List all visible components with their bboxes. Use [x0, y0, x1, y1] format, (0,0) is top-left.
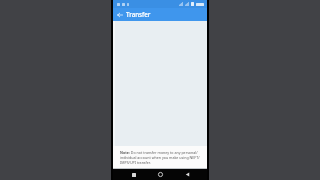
- staticText: Note: Do not transfer money to any perso…: [120, 150, 200, 165]
- staticText: Transfer: [126, 10, 151, 18]
- button[interactable]: Back: [181, 169, 193, 180]
- button[interactable]: Recent apps: [128, 169, 140, 180]
- button[interactable]: Home: [154, 169, 166, 180]
- button[interactable]: Back: [113, 8, 126, 21]
